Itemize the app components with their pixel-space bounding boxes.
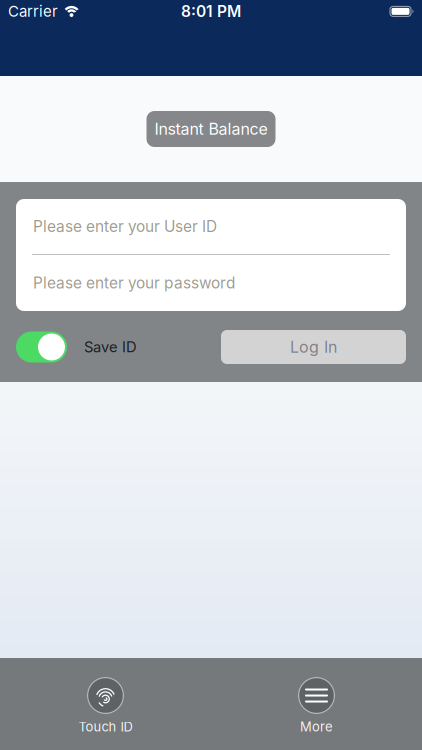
button[interactable]: Log In bbox=[221, 330, 406, 364]
staticText: Touch ID bbox=[78, 719, 132, 735]
button[interactable]: Save ID bbox=[16, 331, 67, 362]
staticText: 8:01 PM bbox=[181, 2, 241, 21]
staticText: Instant Balance bbox=[154, 119, 267, 139]
staticText: Please enter your User ID bbox=[33, 217, 217, 236]
textField[interactable]: Please enter your User ID bbox=[33, 217, 398, 236]
secureTextField[interactable]: Please enter your password bbox=[33, 274, 398, 292]
staticText: Please enter your password bbox=[33, 274, 235, 292]
staticText: Save ID bbox=[84, 338, 137, 356]
staticText: More bbox=[300, 719, 333, 735]
staticText: Carrier bbox=[8, 2, 58, 20]
button[interactable]: Instant Balance bbox=[146, 111, 275, 147]
staticText: Log In bbox=[290, 337, 337, 357]
button[interactable]: More bbox=[211, 677, 422, 735]
button[interactable]: Touch ID bbox=[0, 677, 211, 735]
